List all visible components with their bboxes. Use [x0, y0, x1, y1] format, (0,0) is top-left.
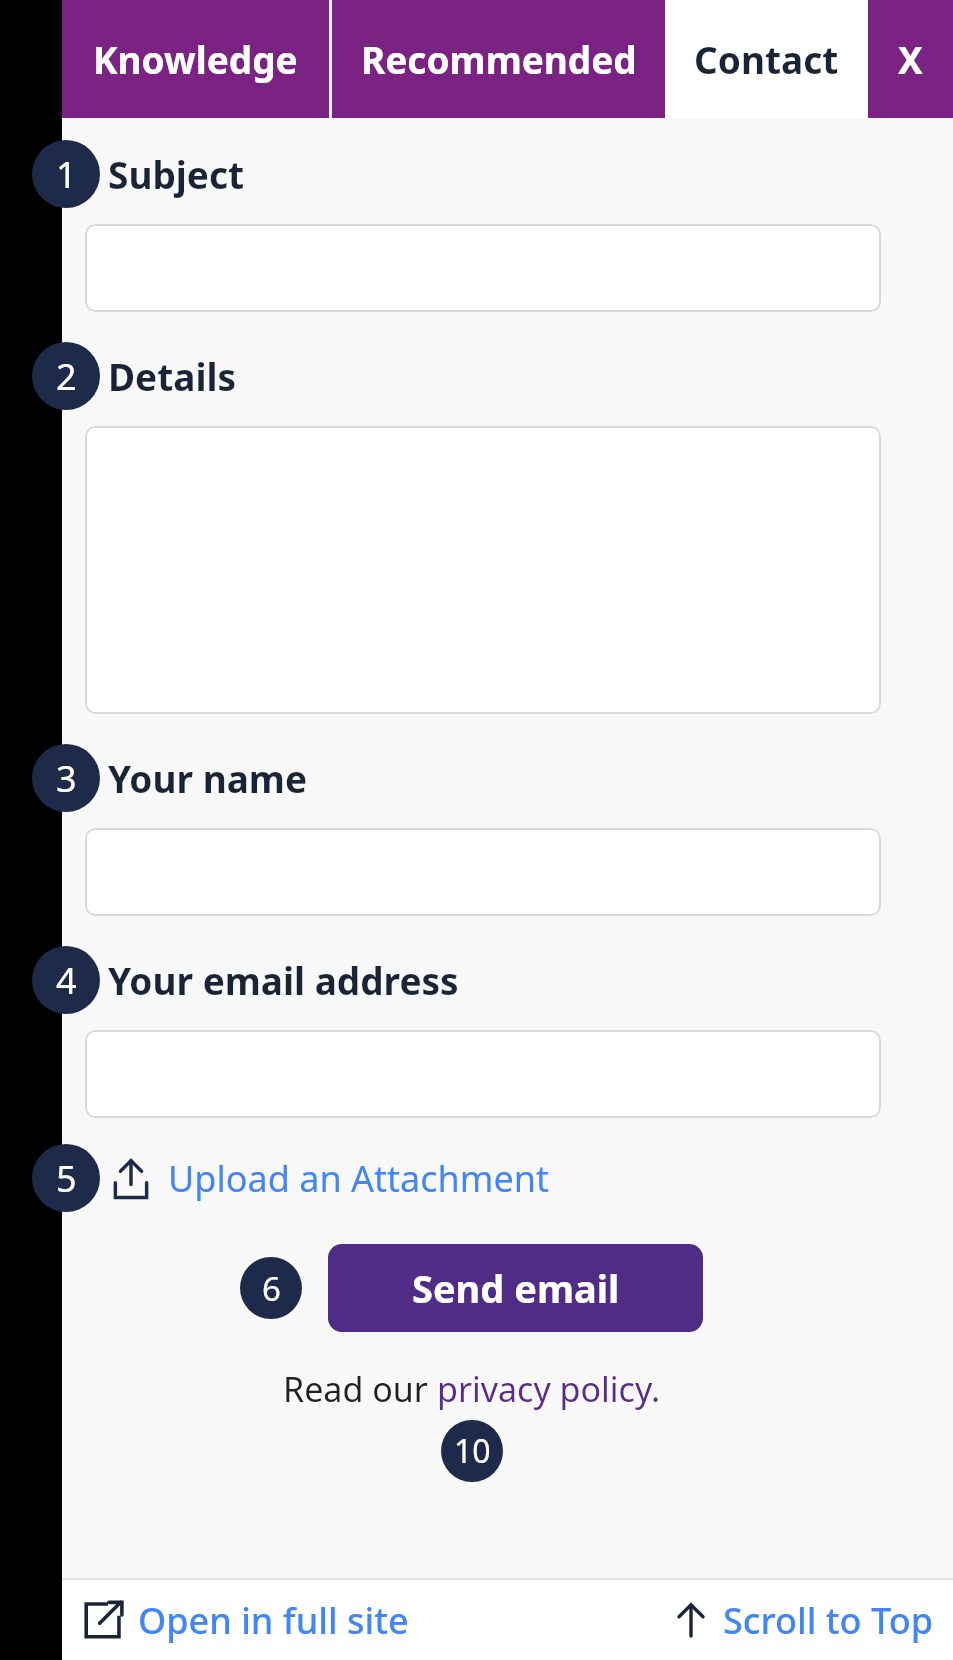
staticText: 4	[56, 956, 77, 1005]
staticText: Scroll to Top	[723, 1596, 933, 1645]
button[interactable]: Close	[868, 0, 953, 118]
button[interactable]	[85, 828, 881, 916]
staticText: 1	[56, 150, 77, 199]
button[interactable]: privacy policy.	[437, 1366, 661, 1412]
button[interactable]	[85, 426, 881, 714]
button[interactable]: Contact	[665, 0, 868, 118]
staticText: 3	[56, 754, 77, 803]
staticText: Open in full site	[138, 1596, 409, 1645]
button[interactable]	[85, 224, 881, 312]
staticText: 6	[262, 1266, 281, 1311]
staticText: Your email address	[108, 955, 459, 1005]
other: Open in full site	[82, 1599, 124, 1641]
button[interactable]: Open in full site	[82, 1580, 507, 1660]
staticText: 5	[56, 1154, 77, 1203]
staticText: Upload an Attachment	[168, 1154, 549, 1203]
button[interactable]: Knowledge	[62, 0, 329, 118]
button[interactable]: Scroll to Top	[507, 1580, 933, 1660]
button[interactable]	[85, 1030, 881, 1118]
staticText: Contact	[694, 34, 839, 84]
button[interactable]: Upload an Attachment	[108, 1154, 549, 1203]
staticText: Send email	[412, 1262, 620, 1314]
staticText: Read our	[283, 1366, 437, 1412]
staticText: Knowledge	[93, 34, 298, 84]
button[interactable]: Recommended	[332, 0, 665, 118]
other: Scroll to Top	[671, 1600, 711, 1640]
button[interactable]: Send email	[328, 1244, 703, 1332]
staticText: Recommended	[361, 34, 637, 84]
staticText: 10	[454, 1429, 491, 1473]
staticText: Details	[108, 351, 237, 401]
staticText: 2	[56, 352, 77, 401]
staticText: X	[898, 34, 923, 84]
staticText: Subject	[108, 149, 245, 199]
staticText: Your name	[108, 753, 308, 803]
